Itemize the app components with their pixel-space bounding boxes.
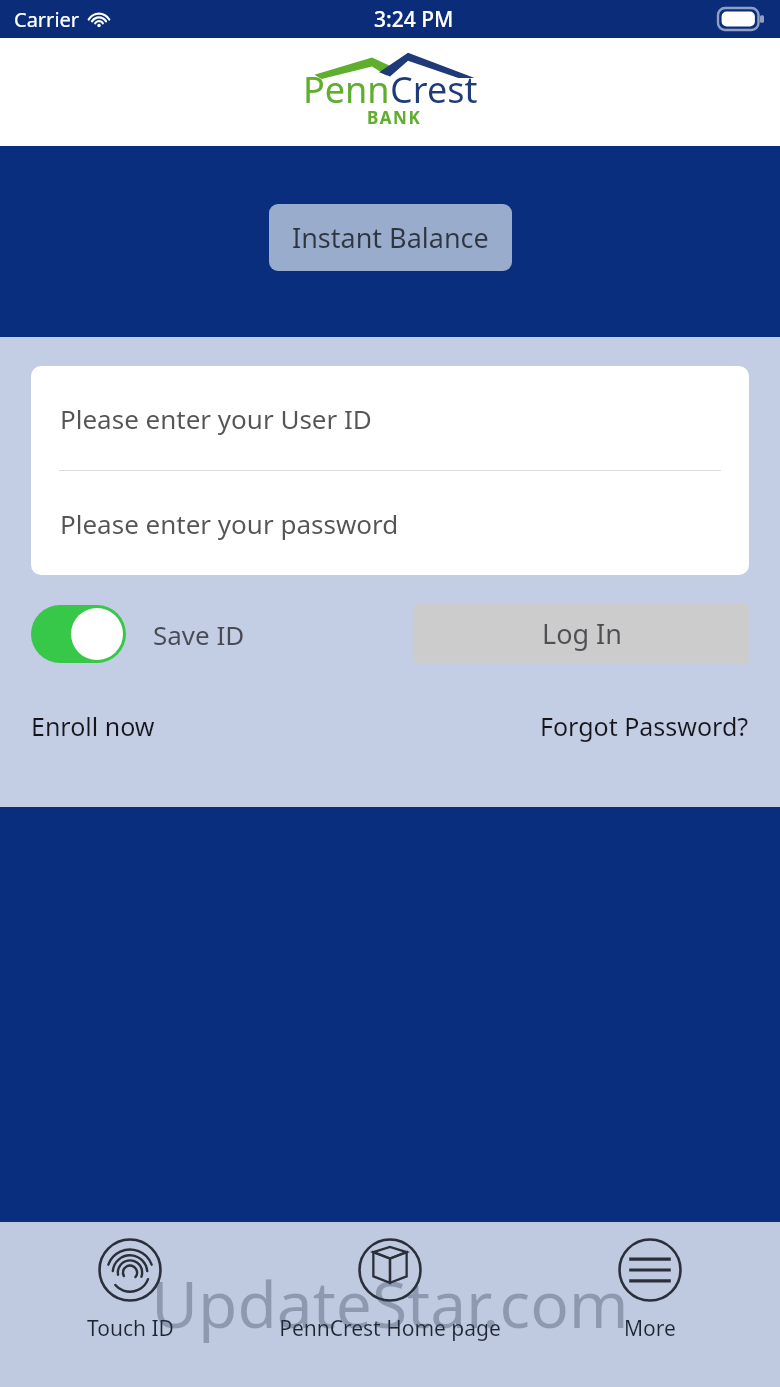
staticText: Forgot Password? <box>540 709 749 743</box>
button[interactable]: Please enter your password <box>31 471 749 575</box>
staticText: BANK <box>367 106 422 129</box>
staticText: Log In <box>542 615 622 652</box>
button[interactable]: Save ID <box>31 605 245 663</box>
staticText: More <box>624 1314 676 1343</box>
staticText: Touch ID <box>87 1314 174 1343</box>
staticText: Save ID <box>153 617 245 652</box>
button[interactable]: Instant Balance <box>269 204 512 271</box>
button[interactable]: More <box>520 1238 780 1343</box>
staticText: Enroll now <box>31 709 155 743</box>
button[interactable]: Enroll now <box>31 709 155 743</box>
button[interactable]: Log In <box>414 604 749 663</box>
staticText: Please enter your password <box>60 506 399 541</box>
staticText: Please enter your User ID <box>60 401 372 436</box>
button[interactable]: Please enter your User ID <box>31 366 749 470</box>
button[interactable]: PennCrest Home page <box>260 1238 520 1343</box>
button[interactable]: Touch ID <box>0 1238 260 1343</box>
staticText: Instant Balance <box>292 219 489 256</box>
staticText: Carrier <box>14 6 80 33</box>
staticText: PennCrest Home page <box>279 1314 501 1343</box>
staticText: UpdateStar.com <box>151 1260 629 1347</box>
staticText: 3:24 PM <box>374 5 454 34</box>
staticText: Crest <box>390 65 478 114</box>
button[interactable]: Forgot Password? <box>540 709 749 743</box>
staticText: Penn <box>303 65 390 114</box>
